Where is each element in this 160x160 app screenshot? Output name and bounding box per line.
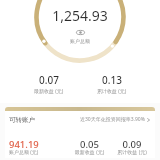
staticText: 0.05 — [68, 138, 111, 151]
button[interactable]: 0.09 — [111, 138, 153, 158]
staticText: 近30天年化投资回报率3.90% — [80, 116, 145, 123]
staticText: 最新收益 (元) — [68, 149, 111, 156]
staticText: 累计收益 (元) — [111, 149, 153, 156]
button[interactable]: Toggle balance visibility — [0, 30, 160, 44]
staticText: 账户总额 (元) — [9, 149, 68, 156]
staticText: 941.19 — [9, 138, 68, 151]
staticText: 0.09 — [111, 138, 153, 151]
staticText: 最新收益 (元) — [34, 88, 64, 95]
staticText: 累计收益 (元) — [97, 88, 127, 95]
staticText: 账户总额 — [70, 38, 90, 44]
button[interactable]: 0.05 — [68, 138, 111, 158]
button[interactable]: 941.19 — [9, 138, 68, 158]
staticText: 可转账户 — [9, 116, 35, 124]
other: Toggle balance visibility — [76, 30, 85, 35]
staticText: 0.13 — [102, 73, 122, 87]
staticText: 1,254.93 — [0, 6, 160, 25]
button[interactable]: 0.07 — [17, 73, 80, 95]
button[interactable]: 0.13 — [80, 73, 143, 95]
staticText: 0.07 — [39, 73, 59, 87]
button[interactable]: 可转账户 — [5, 111, 155, 128]
